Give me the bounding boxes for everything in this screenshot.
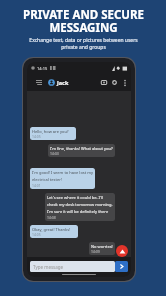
staticText: Type message <box>33 264 64 270</box>
staticText: 14:01 <box>32 183 41 188</box>
staticText: PRIVATE AND SECURE MESSAGING <box>23 7 144 36</box>
button[interactable]: More options <box>121 79 129 87</box>
button[interactable]: I'm fine, thanks! What about you? <box>48 144 115 157</box>
staticText: Okay, great! Thanks! <box>32 227 71 232</box>
button[interactable]: Let's see where it could be. I'll check … <box>45 193 115 221</box>
staticText: Exchange text, data or pictures between … <box>29 37 138 51</box>
staticText: 14:05 <box>32 134 41 139</box>
staticText: 14:03 <box>50 151 59 156</box>
button[interactable]: Record <box>116 245 128 257</box>
staticText: I'm fine, thanks! What about you? <box>50 146 113 151</box>
staticText: 14:15 <box>37 66 48 71</box>
button[interactable]: Menu <box>34 78 43 87</box>
staticText: Jack <box>57 79 69 86</box>
button[interactable]: Send <box>115 261 128 272</box>
staticText: Let's see where it could be. I'll check … <box>47 195 113 215</box>
staticText: 14:05 <box>32 232 41 237</box>
button[interactable]: No worries! <box>89 242 115 255</box>
staticText: 14:08 <box>47 215 56 220</box>
staticText: I'm good! I seem to have lost my electri… <box>32 170 93 183</box>
staticText: 14:09 <box>91 249 100 254</box>
button[interactable]: I'm good! I seem to have lost my electri… <box>30 168 95 189</box>
button[interactable]: Okay, great! Thanks! <box>30 225 78 238</box>
button[interactable]: Hello, how are you? <box>30 127 76 140</box>
staticText: Hello, how are you? <box>32 129 69 134</box>
button[interactable]: Video call <box>99 78 108 87</box>
button[interactable]: Call <box>110 78 119 87</box>
staticText: No worries! <box>91 244 113 249</box>
button[interactable]: Type message <box>30 261 115 272</box>
